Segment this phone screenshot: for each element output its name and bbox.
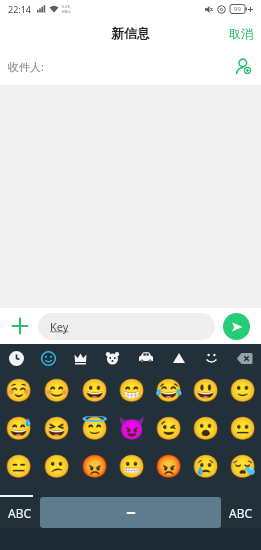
staticText: 😑 bbox=[5, 454, 33, 480]
staticText: ABC bbox=[8, 505, 32, 521]
staticText: Key bbox=[50, 319, 69, 334]
staticText: 新信息 bbox=[111, 25, 150, 41]
staticText: 😀 bbox=[81, 378, 109, 404]
staticText: ☺️ bbox=[5, 378, 33, 404]
button[interactable]: 😑 bbox=[0, 448, 38, 486]
staticText: 😉 bbox=[155, 416, 183, 442]
button[interactable]: 😂 bbox=[150, 372, 187, 410]
staticText: 😡 bbox=[81, 454, 109, 480]
button[interactable] bbox=[40, 497, 221, 528]
staticText: 收件人: bbox=[8, 59, 44, 74]
button[interactable]: 😕 bbox=[38, 448, 76, 486]
button[interactable] bbox=[96, 344, 129, 372]
staticText: 😅 bbox=[5, 416, 33, 442]
button[interactable]: 😁 bbox=[113, 372, 150, 410]
button[interactable]: 😪 bbox=[224, 448, 261, 486]
button[interactable]: 取消 bbox=[221, 18, 261, 48]
button[interactable]: 😈 bbox=[113, 410, 150, 448]
staticText: 😂 bbox=[155, 378, 183, 404]
staticText: 😡 bbox=[155, 454, 183, 480]
staticText: 😕 bbox=[43, 454, 71, 480]
staticText: KB/s bbox=[62, 9, 71, 14]
staticText: 😈 bbox=[118, 416, 146, 442]
button[interactable]: 😮 bbox=[187, 410, 224, 448]
button[interactable]: ☺️ bbox=[0, 372, 38, 410]
staticText: 22:14 bbox=[8, 3, 32, 15]
button[interactable]: 😉 bbox=[150, 410, 187, 448]
button[interactable] bbox=[129, 344, 162, 372]
button[interactable]: 😢 bbox=[187, 448, 224, 486]
staticText: 😇 bbox=[81, 416, 109, 442]
button[interactable]: 😃 bbox=[187, 372, 224, 410]
button[interactable] bbox=[32, 344, 64, 372]
staticText: 😐 bbox=[229, 416, 257, 442]
button[interactable]: 😀 bbox=[76, 372, 113, 410]
button[interactable] bbox=[0, 344, 32, 372]
staticText: 😁 bbox=[118, 378, 146, 404]
button[interactable] bbox=[195, 344, 228, 372]
button[interactable]: 😇 bbox=[76, 410, 113, 448]
staticText: 😪 bbox=[229, 454, 257, 480]
button[interactable] bbox=[12, 318, 28, 334]
button[interactable]: 😅 bbox=[0, 410, 38, 448]
button[interactable]: 😡 bbox=[76, 448, 113, 486]
button[interactable] bbox=[228, 344, 261, 372]
staticText: 99 bbox=[234, 5, 241, 13]
button[interactable]: Key bbox=[38, 313, 215, 340]
staticText: ABC bbox=[229, 505, 253, 521]
staticText: 😃 bbox=[192, 378, 220, 404]
button[interactable]: 😬 bbox=[113, 448, 150, 486]
button[interactable] bbox=[162, 344, 195, 372]
staticText: 😆 bbox=[43, 416, 71, 442]
button[interactable]: 😡 bbox=[150, 448, 187, 486]
button[interactable] bbox=[64, 344, 96, 372]
button[interactable]: 😐 bbox=[224, 410, 261, 448]
button[interactable]: ABC bbox=[0, 497, 40, 528]
button[interactable]: ABC bbox=[221, 497, 261, 528]
button[interactable]: 😊 bbox=[38, 372, 76, 410]
staticText: 0.26 bbox=[62, 4, 70, 9]
button[interactable]: 😆 bbox=[38, 410, 76, 448]
staticText: 取消 bbox=[229, 26, 253, 41]
staticText: 🙂 bbox=[229, 378, 257, 404]
button[interactable] bbox=[223, 313, 250, 340]
staticText: 😢 bbox=[192, 454, 220, 480]
button[interactable]: 🙂 bbox=[224, 372, 261, 410]
button[interactable]: 收件人: bbox=[0, 48, 261, 85]
staticText: 😬 bbox=[118, 454, 146, 480]
staticText: 😮 bbox=[192, 416, 220, 442]
staticText: 😊 bbox=[43, 378, 71, 404]
